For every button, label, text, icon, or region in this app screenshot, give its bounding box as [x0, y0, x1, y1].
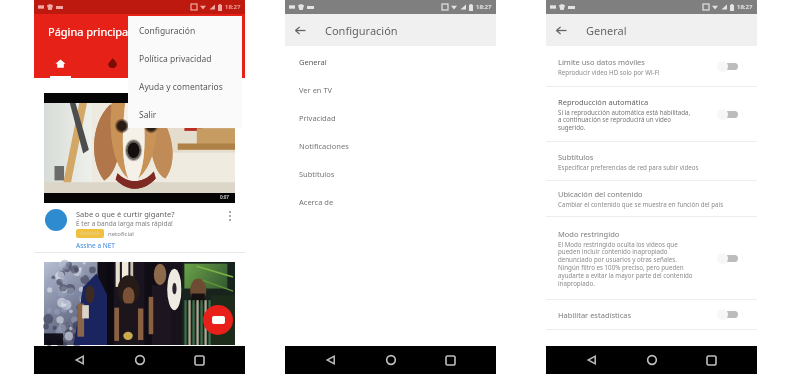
button[interactable]: Back — [285, 15, 315, 45]
staticText: Acerca de — [299, 197, 334, 207]
staticText: Ubicación del contenido — [558, 189, 643, 199]
staticText: Privacidad — [299, 113, 336, 123]
button[interactable]: Ayuda y comentarios — [128, 73, 242, 101]
staticText: General — [586, 23, 627, 38]
staticText: Notificaciones — [299, 141, 349, 151]
staticText: É ter a banda larga mais rápida! — [76, 219, 173, 228]
button[interactable]: Ver en TV — [285, 76, 496, 104]
button[interactable]: Back — [546, 15, 576, 45]
staticText: 18:27 — [737, 3, 753, 11]
staticText: Cambiar el contenido que se muestra en f… — [558, 200, 724, 208]
staticText: netoficial — [108, 230, 134, 238]
staticText: Anúncio — [80, 230, 100, 237]
staticText: Especificar preferencias de red para sub… — [558, 163, 699, 171]
button[interactable]: Límite uso datos móviles — [546, 46, 757, 87]
button[interactable]: Salir — [128, 101, 242, 128]
staticText: Ayuda y comentarios — [139, 81, 223, 93]
button[interactable]: Ubicación del contenido — [546, 181, 757, 217]
button[interactable]: Reproducción automática — [546, 87, 757, 142]
staticText: Página principal — [48, 24, 132, 39]
button[interactable]: Play — [203, 305, 233, 335]
staticText: El Modo restringido oculta los videos qu… — [558, 240, 693, 288]
staticText: Si la reproducción automática está habil… — [558, 108, 691, 132]
button[interactable]: Trending tab — [86, 48, 139, 78]
button[interactable]: Recents — [697, 346, 725, 374]
button[interactable]: Política privacidad — [128, 45, 242, 73]
staticText: Política privacidad — [139, 53, 212, 65]
staticText: Subtítulos — [558, 152, 594, 162]
button[interactable]: Home — [377, 346, 405, 374]
staticText: 18:27 — [225, 3, 241, 11]
staticText: Modo restringido — [558, 229, 620, 239]
button[interactable]: Notificaciones — [285, 132, 496, 160]
button[interactable]: Back — [578, 346, 606, 374]
button[interactable]: Acerca de — [285, 188, 496, 216]
button[interactable]: Privacidad — [285, 104, 496, 132]
button[interactable]: Home — [126, 346, 154, 374]
staticText: Sabe o que é curtir gigante? — [76, 209, 175, 219]
button[interactable]: Subtítulos — [285, 160, 496, 188]
button[interactable]: More options — [223, 209, 237, 223]
staticText: Límite uso datos móviles — [558, 57, 645, 67]
staticText: Subtítulos — [299, 169, 335, 179]
staticText: Assine a NET — [76, 241, 115, 250]
button[interactable]: Home — [638, 346, 666, 374]
staticText: Salir — [139, 109, 157, 121]
button[interactable]: Back — [317, 346, 345, 374]
button[interactable]: Modo restringido — [546, 217, 757, 300]
staticText: Reproducción automática — [558, 97, 649, 107]
button[interactable]: General — [285, 48, 496, 76]
button[interactable]: Configuración — [128, 17, 242, 45]
button[interactable]: Subtítulos — [546, 142, 757, 181]
button[interactable]: Habilitar estadísticas — [546, 300, 757, 330]
button[interactable]: Home tab — [34, 48, 86, 78]
staticText: Habilitar estadísticas — [558, 310, 632, 320]
button[interactable]: Recents — [185, 346, 213, 374]
button[interactable]: Back — [66, 346, 94, 374]
staticText: General — [299, 57, 327, 67]
staticText: 18:27 — [476, 3, 492, 11]
staticText: Configuración — [325, 23, 398, 38]
staticText: 0:07 — [220, 194, 229, 200]
staticText: Reproducir video HD solo por Wi-Fi — [558, 68, 660, 76]
staticText: Ver en TV — [299, 85, 333, 95]
staticText: Configuración — [139, 25, 196, 37]
button[interactable]: Recents — [436, 346, 464, 374]
